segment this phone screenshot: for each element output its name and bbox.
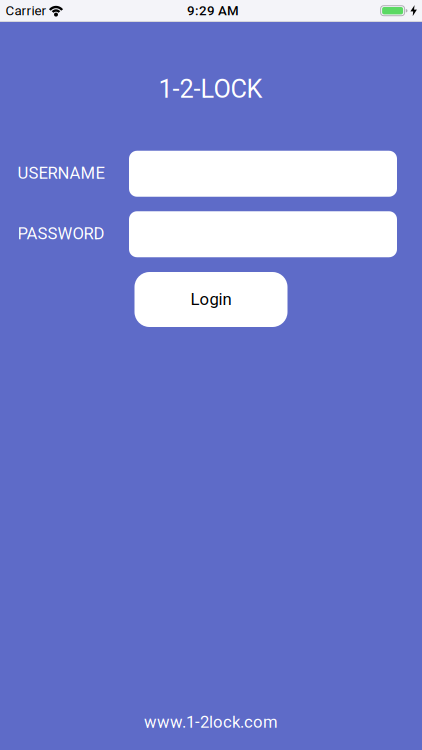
button[interactable]: Login <box>134 272 287 327</box>
staticText: www.1-2lock.com <box>144 712 278 732</box>
button[interactable]: Username text field <box>129 151 397 197</box>
staticText: 9:29 AM <box>187 3 239 18</box>
staticText: 1-2-LOCK <box>158 74 262 104</box>
staticText: Carrier <box>5 3 46 18</box>
staticText: PASSWORD <box>17 224 104 243</box>
staticText: Login <box>190 289 231 309</box>
button[interactable]: Password text field <box>129 211 397 257</box>
staticText: USERNAME <box>17 163 104 183</box>
